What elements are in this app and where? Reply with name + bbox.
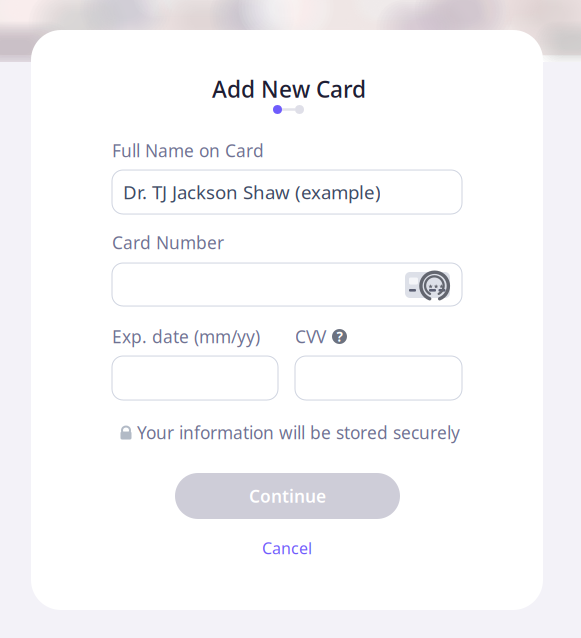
button[interactable]: Continue [175, 473, 400, 519]
staticText: ? [336, 328, 342, 345]
staticText: Full Name on Card [112, 139, 264, 162]
button[interactable]: Cancel [242, 536, 332, 560]
staticText: Card Number [112, 231, 224, 254]
staticText: Dr. TJ Jackson Shaw (example) [123, 180, 381, 204]
staticText: Your information will be stored securely [137, 421, 460, 444]
staticText: CVV [295, 325, 326, 348]
staticText: Continue [249, 484, 326, 507]
staticText: Exp. date (mm/yy) [112, 325, 260, 348]
staticText: Add New Card [212, 74, 366, 104]
staticText: Cancel [262, 537, 312, 559]
